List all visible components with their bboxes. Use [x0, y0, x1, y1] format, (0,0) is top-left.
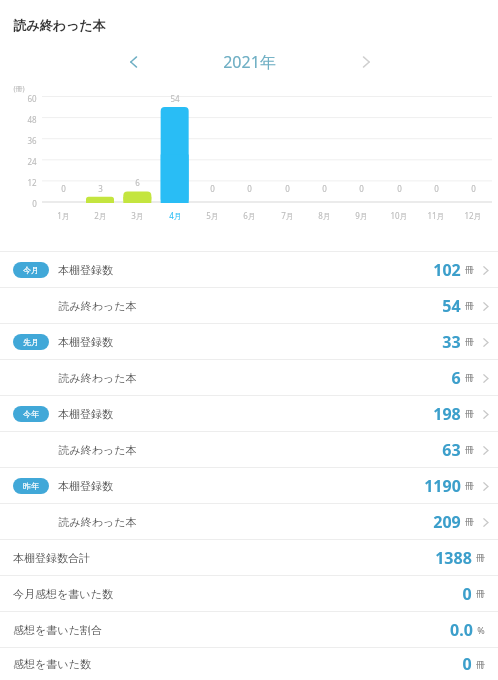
staticText: 冊	[465, 300, 474, 311]
button[interactable]: 感想を書いた割合	[0, 612, 498, 647]
staticText: 36	[27, 135, 37, 146]
staticText: 今月	[23, 265, 39, 275]
staticText: 9月	[355, 210, 368, 221]
button[interactable]: 感想を書いた数	[0, 648, 498, 680]
staticText: 0	[397, 183, 402, 194]
staticText: 198	[433, 403, 461, 425]
staticText: 本棚登録数	[58, 263, 113, 277]
staticText: 昨年	[23, 481, 39, 491]
staticText: 0	[434, 183, 439, 194]
staticText: 6月	[243, 210, 256, 221]
staticText: 54	[442, 295, 461, 317]
staticText: 感想を書いた割合	[13, 623, 102, 637]
staticText: %	[477, 624, 485, 636]
staticText: 0	[471, 183, 476, 194]
staticText: 0	[61, 183, 66, 194]
staticText: 冊	[465, 372, 474, 383]
staticText: 60	[27, 93, 37, 104]
staticText: 冊	[465, 336, 474, 347]
staticText: 今月感想を書いた数	[13, 587, 113, 601]
staticText: 7月	[281, 210, 294, 221]
staticText: 読み終わった本	[58, 299, 137, 313]
staticText: 0	[462, 653, 472, 675]
staticText: 冊	[476, 588, 485, 599]
staticText: 63	[442, 439, 461, 461]
button[interactable]: 読み終わった本	[0, 432, 498, 467]
staticText: 10月	[390, 210, 408, 221]
button[interactable]: 今月感想を書いた数	[0, 576, 498, 611]
staticText: (冊)	[13, 84, 25, 94]
staticText: 本棚登録数	[58, 479, 113, 493]
staticText: 読み終わった本	[13, 17, 106, 33]
button[interactable]: 読み終わった本	[0, 360, 498, 395]
staticText: 48	[27, 114, 37, 125]
button[interactable]: 今年	[0, 396, 498, 431]
staticText: 本棚登録数	[58, 335, 113, 349]
button[interactable]: 2021年	[223, 51, 276, 73]
staticText: 本棚登録数合計	[13, 551, 90, 565]
button[interactable]: 本棚登録数合計	[0, 540, 498, 575]
staticText: 5月	[206, 210, 219, 221]
staticText: 読み終わった本	[58, 371, 137, 385]
staticText: 冊	[465, 480, 474, 491]
staticText: 本棚登録数	[58, 407, 113, 421]
staticText: 6	[135, 177, 140, 188]
staticText: 102	[433, 259, 461, 281]
staticText: 冊	[465, 264, 474, 275]
staticText: 0	[32, 198, 37, 209]
staticText: 3月	[131, 210, 144, 221]
staticText: 24	[27, 156, 37, 167]
staticText: 12月	[464, 210, 482, 221]
staticText: 冊	[465, 408, 474, 419]
staticText: 0	[247, 183, 252, 194]
staticText: 冊	[476, 659, 485, 670]
staticText: 0	[322, 183, 327, 194]
staticText: 冊	[476, 552, 485, 563]
staticText: 33	[442, 331, 461, 353]
button[interactable]: 昨年	[0, 468, 498, 503]
button[interactable]: 読み終わった本	[0, 504, 498, 539]
staticText: 4月	[169, 210, 182, 221]
staticText: 今年	[23, 409, 39, 419]
button[interactable]: 次の年	[352, 48, 380, 76]
button[interactable]: 今月	[0, 252, 498, 287]
staticText: 先月	[23, 337, 39, 347]
staticText: 冊	[465, 444, 474, 455]
staticText: 54	[170, 93, 180, 104]
button[interactable]: 前の年	[120, 48, 148, 76]
staticText: 2月	[94, 210, 107, 221]
staticText: 冊	[465, 516, 474, 527]
staticText: 読み終わった本	[58, 515, 137, 529]
staticText: 12	[27, 177, 37, 188]
button[interactable]: 読み終わった本	[0, 288, 498, 323]
staticText: 6	[451, 367, 461, 389]
staticText: 0.0	[450, 619, 473, 641]
staticText: 1388	[435, 547, 472, 569]
button[interactable]: 先月	[0, 324, 498, 359]
staticText: 0	[359, 183, 364, 194]
staticText: 1月	[57, 210, 70, 221]
staticText: 209	[433, 511, 461, 533]
staticText: 感想を書いた数	[13, 657, 91, 671]
staticText: 8月	[318, 210, 331, 221]
staticText: 読み終わった本	[58, 443, 137, 457]
staticText: 0	[285, 183, 290, 194]
staticText: 0	[462, 583, 472, 605]
staticText: 1190	[424, 475, 461, 497]
staticText: 3	[98, 183, 103, 194]
staticText: 0	[210, 183, 215, 194]
staticText: 11月	[427, 210, 445, 221]
